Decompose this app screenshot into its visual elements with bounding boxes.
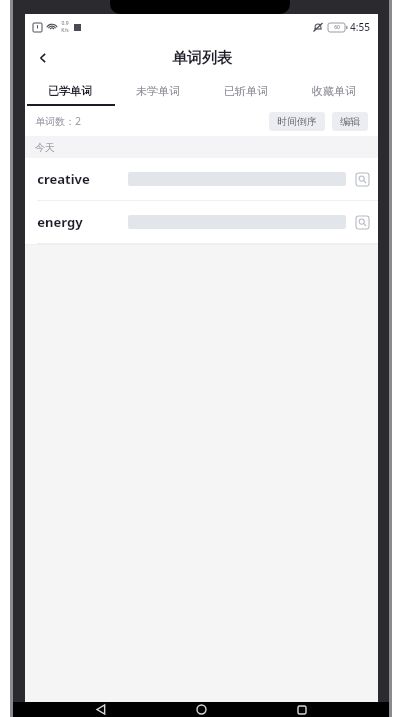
button[interactable]: Back <box>25 40 61 76</box>
button[interactable]: creative <box>25 158 378 200</box>
button[interactable]: Search word <box>346 158 378 200</box>
staticText: 0.9 <box>61 20 69 27</box>
button[interactable]: 时间倒序 <box>269 112 325 131</box>
button[interactable]: energy <box>25 201 378 243</box>
staticText: 已斩单词 <box>224 84 268 98</box>
button[interactable]: Recent apps <box>289 702 315 717</box>
staticText: 单词列表 <box>172 49 232 68</box>
button[interactable]: 收藏单词 <box>290 76 378 106</box>
staticText: 今天 <box>35 141 55 154</box>
button[interactable]: 未学单词 <box>114 76 202 106</box>
button[interactable]: 已学单词 <box>25 76 114 106</box>
button[interactable]: 编辑 <box>332 112 368 131</box>
staticText: 单词数：2 <box>35 114 81 128</box>
button[interactable]: Search word <box>346 201 378 243</box>
button[interactable]: Back <box>88 702 114 717</box>
staticText: energy <box>37 213 83 231</box>
staticText: 已学单词 <box>48 84 92 98</box>
staticText: 编辑 <box>340 115 360 128</box>
staticText: 60 <box>334 24 340 31</box>
staticText: creative <box>37 170 90 188</box>
button[interactable]: 已斩单词 <box>202 76 290 106</box>
button[interactable]: Home <box>188 702 214 717</box>
staticText: K/s <box>61 27 69 34</box>
staticText: 未学单词 <box>136 84 180 98</box>
staticText: 收藏单词 <box>312 84 356 98</box>
staticText: 时间倒序 <box>277 115 317 128</box>
staticText: 4:55 <box>350 20 370 34</box>
